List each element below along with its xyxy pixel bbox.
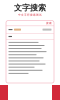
staticText: 中文字符搜索测试 (18, 13, 42, 17)
staticText: 搜索 (46, 21, 52, 25)
staticText: 文字搜索 (14, 3, 46, 13)
